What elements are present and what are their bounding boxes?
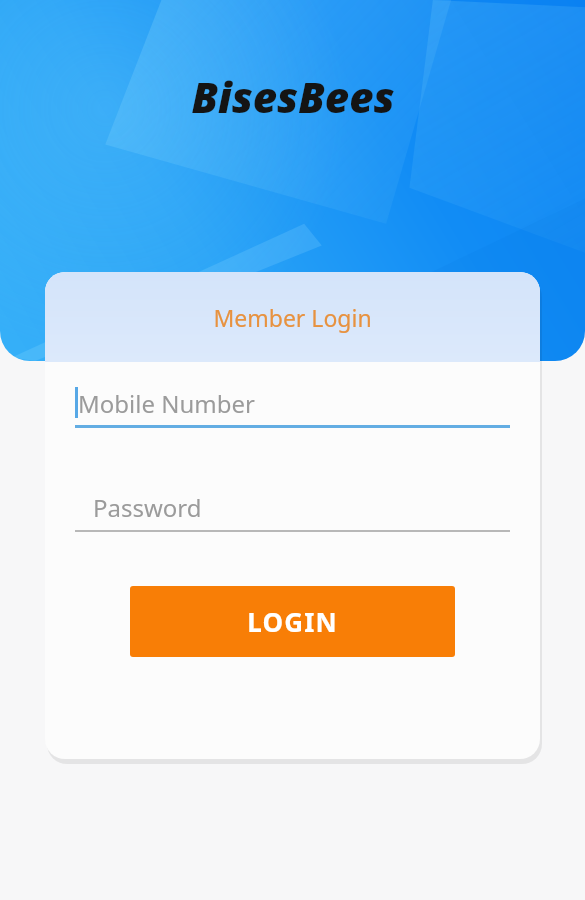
staticText: BisesBees bbox=[191, 68, 395, 125]
staticText: Mobile Number bbox=[78, 387, 255, 420]
button[interactable]: Password bbox=[75, 482, 510, 532]
staticText: Member Login bbox=[213, 302, 372, 333]
button[interactable]: Mobile Number bbox=[75, 378, 510, 428]
staticText: LOGIN bbox=[247, 604, 338, 639]
button[interactable]: LOGIN bbox=[130, 586, 455, 657]
staticText: Password bbox=[93, 491, 202, 524]
